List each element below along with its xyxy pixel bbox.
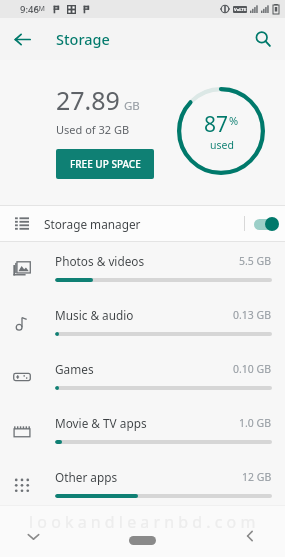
staticText: GB [124, 98, 140, 114]
staticText: 27.89 [56, 83, 120, 117]
button[interactable]: FREE UP SPACE [56, 149, 154, 179]
staticText: Music & audio [55, 307, 134, 323]
staticText: 12 GB [242, 470, 272, 484]
staticText: 87 [204, 110, 229, 139]
button[interactable]: Hide keyboard [22, 525, 44, 547]
staticText: 0.13 GB [233, 308, 272, 322]
staticText: AM [34, 4, 46, 14]
button[interactable]: Storage manager [0, 205, 285, 242]
staticText: l o o k a n d l e a r n b d . c o m [29, 511, 256, 533]
button[interactable]: Back [8, 25, 36, 53]
button[interactable]: Back [239, 525, 261, 547]
button[interactable]: Music & audio [0, 296, 285, 350]
staticText: Used of 32 GB [56, 122, 130, 137]
staticText: 0.10 GB [233, 362, 272, 376]
button[interactable]: Home [129, 536, 156, 545]
button[interactable]: Games [0, 350, 285, 404]
button[interactable]: Movie & TV apps [0, 404, 285, 458]
staticText: Movie & TV apps [55, 415, 147, 431]
staticText: 5.5 GB [239, 254, 272, 268]
staticText: Storage manager [44, 216, 141, 232]
staticText: % [229, 113, 239, 128]
staticText: 1.0 GB [239, 416, 272, 430]
staticText: Games [55, 361, 94, 377]
staticText: Photos & videos [55, 253, 145, 269]
staticText: Storage [56, 29, 110, 49]
button[interactable]: Search [249, 25, 277, 53]
staticText: Other apps [55, 469, 118, 485]
staticText: FREE UP SPACE [70, 157, 141, 171]
button[interactable]: Photos & videos [0, 242, 285, 296]
button[interactable]: Storage manager toggle [245, 205, 285, 242]
staticText: used [210, 138, 234, 152]
staticText: 9:46 [20, 3, 39, 16]
staticText: VoLTE [234, 7, 247, 13]
button[interactable]: Other apps [0, 458, 285, 512]
